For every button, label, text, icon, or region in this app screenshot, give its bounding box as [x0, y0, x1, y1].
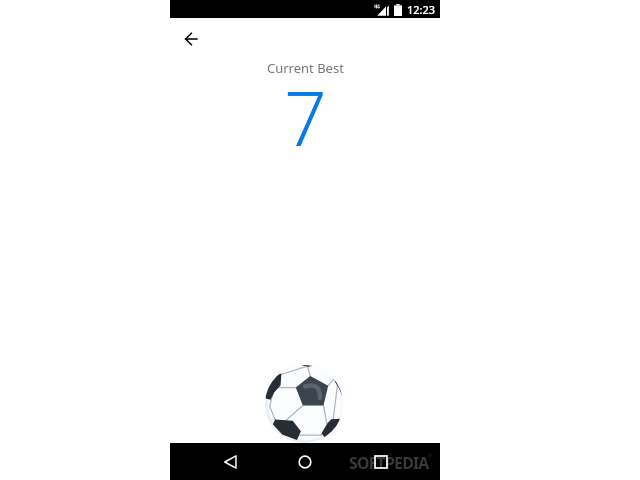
button[interactable]: Home: [285, 443, 325, 480]
button[interactable]: Recent apps: [361, 443, 401, 480]
staticText: SOFTPEDIA: [349, 452, 429, 474]
button[interactable]: Back: [171, 19, 211, 59]
staticText: 12:23: [407, 2, 436, 17]
button[interactable]: Soccer ball: [265, 365, 343, 443]
staticText: Current Best: [267, 59, 344, 77]
staticText: ®: [428, 453, 433, 460]
staticText: 7: [284, 66, 327, 168]
button[interactable]: Back: [210, 443, 250, 480]
